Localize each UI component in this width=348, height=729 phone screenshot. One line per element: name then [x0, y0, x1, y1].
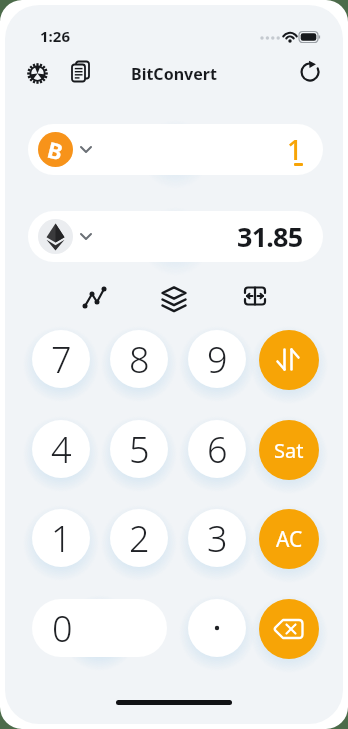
staticText: 3: [207, 514, 228, 563]
staticText: 1: [51, 514, 72, 563]
button[interactable]: 3: [188, 509, 246, 567]
staticText: 9: [207, 335, 228, 384]
button[interactable]: [298, 59, 322, 83]
staticText: 0: [52, 604, 73, 653]
button[interactable]: [259, 599, 319, 659]
staticText: 8: [129, 335, 150, 384]
staticText: 1: [287, 131, 303, 168]
button[interactable]: 7: [32, 330, 90, 388]
staticText: 31.85: [237, 218, 303, 255]
button[interactable]: 4: [32, 420, 90, 478]
staticText: 1:26: [40, 26, 70, 46]
button[interactable]: [259, 330, 319, 390]
staticText: Sat: [274, 437, 304, 464]
button[interactable]: [160, 284, 188, 312]
button[interactable]: B: [28, 124, 323, 175]
button[interactable]: 31.85: [28, 211, 323, 262]
button[interactable]: [26, 60, 50, 84]
button[interactable]: Sat: [259, 420, 319, 480]
button[interactable]: 0: [32, 599, 167, 657]
staticText: 6: [207, 425, 228, 474]
staticText: AC: [276, 525, 303, 554]
button[interactable]: [188, 599, 246, 657]
staticText: BitConvert: [131, 63, 217, 85]
button[interactable]: 8: [110, 330, 168, 388]
button[interactable]: 1: [32, 509, 90, 567]
button[interactable]: [70, 60, 94, 84]
button[interactable]: 9: [188, 330, 246, 388]
button[interactable]: 5: [110, 420, 168, 478]
button[interactable]: 6: [188, 420, 246, 478]
button[interactable]: [243, 285, 269, 311]
button[interactable]: AC: [259, 509, 319, 569]
staticText: 4: [51, 425, 72, 474]
button[interactable]: 2: [110, 509, 168, 567]
staticText: 7: [51, 335, 72, 384]
staticText: 2: [129, 514, 150, 563]
staticText: B: [45, 134, 66, 166]
staticText: 5: [129, 425, 150, 474]
button[interactable]: [82, 285, 108, 311]
